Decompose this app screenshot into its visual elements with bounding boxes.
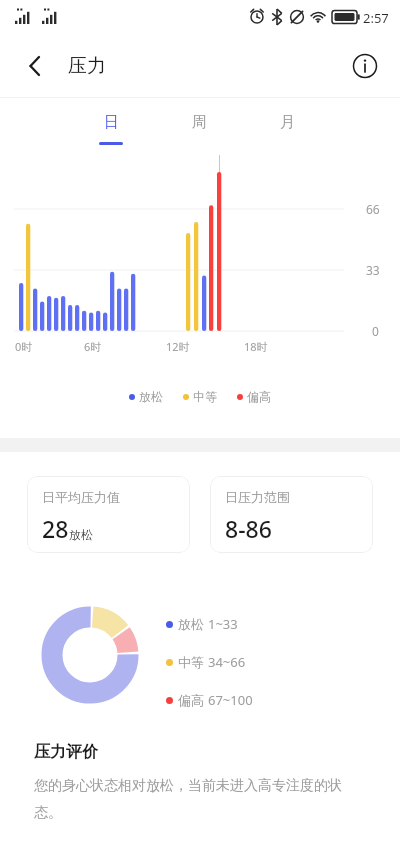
- staticText: 日平均压力值: [42, 489, 120, 505]
- button[interactable]: 日: [79, 106, 143, 152]
- staticText: 28: [42, 513, 69, 544]
- staticText: 6时: [84, 339, 102, 354]
- staticText: 8-86: [225, 513, 272, 544]
- staticText: 日: [104, 113, 119, 132]
- staticText: 放松: [69, 527, 93, 542]
- staticText: 66: [366, 201, 380, 217]
- staticText: 中等: [178, 654, 204, 670]
- button[interactable]: Back: [14, 45, 56, 87]
- staticText: 日压力范围: [225, 489, 290, 505]
- staticText: 67~100: [208, 691, 253, 709]
- button[interactable]: 日压力范围: [210, 476, 373, 553]
- staticText: 偏高: [178, 692, 204, 708]
- button[interactable]: 偏高: [166, 691, 400, 709]
- staticText: 月: [280, 113, 295, 132]
- staticText: 1~33: [208, 615, 238, 633]
- staticText: 压力评价: [34, 742, 98, 762]
- staticText: 放松: [178, 616, 204, 632]
- staticText: 压力: [68, 54, 106, 78]
- staticText: 12时: [166, 339, 190, 354]
- staticText: 中等: [193, 389, 217, 404]
- button[interactable]: Info: [344, 45, 386, 87]
- button[interactable]: 月: [255, 106, 319, 152]
- staticText: 您的身心状态相对放松，当前未进入高专注度的状态。: [34, 777, 366, 821]
- button[interactable]: 中等: [183, 389, 217, 404]
- staticText: 34~66: [208, 653, 246, 671]
- staticText: 偏高: [247, 389, 271, 404]
- staticText: 18时: [244, 339, 268, 354]
- staticText: 2:57: [363, 9, 389, 27]
- staticText: 0: [372, 323, 379, 339]
- staticText: 周: [192, 113, 207, 132]
- staticText: 放松: [139, 389, 163, 404]
- button[interactable]: 周: [167, 106, 231, 152]
- button[interactable]: 日平均压力值: [27, 476, 190, 553]
- button[interactable]: 中等: [166, 653, 400, 671]
- button[interactable]: 放松: [129, 389, 163, 404]
- button[interactable]: 放松: [166, 615, 400, 633]
- staticText: 0时: [15, 339, 33, 354]
- staticText: 33: [366, 262, 380, 278]
- button[interactable]: 偏高: [237, 389, 271, 404]
